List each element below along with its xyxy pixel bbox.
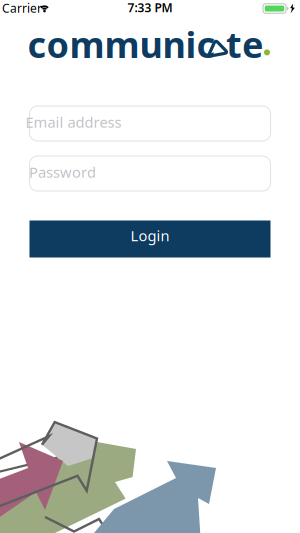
button[interactable]: Password [29, 156, 270, 191]
staticText: communic [27, 20, 215, 68]
staticText: te [226, 20, 263, 68]
staticText: Carrier [2, 0, 42, 16]
button[interactable]: Email address [29, 106, 270, 141]
staticText: Login [130, 226, 169, 245]
staticText: Password [29, 162, 96, 182]
staticText: Email address [25, 112, 121, 132]
button[interactable]: Login [29, 220, 270, 257]
staticText: 7:33 PM [127, 0, 172, 16]
